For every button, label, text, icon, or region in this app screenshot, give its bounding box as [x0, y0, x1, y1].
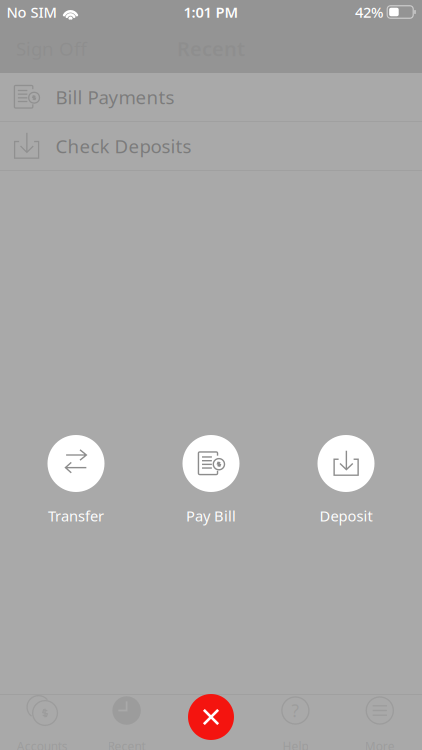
staticText: Deposit	[319, 506, 372, 525]
button[interactable]: Close	[188, 694, 234, 740]
button[interactable]: Deposit	[294, 435, 398, 525]
button[interactable]: Pay Bill	[159, 435, 263, 525]
button[interactable]: Transfer	[24, 435, 128, 525]
button[interactable]	[169, 695, 253, 750]
button[interactable]: Check Deposits	[0, 122, 422, 171]
staticText: No SIM	[6, 2, 56, 22]
staticText: 42%	[355, 2, 383, 22]
staticText: ?	[291, 699, 299, 722]
staticText: Check Deposits	[55, 134, 191, 158]
staticText: Help	[282, 738, 308, 750]
staticText: Accounts	[17, 738, 68, 750]
staticText: Transfer	[48, 506, 104, 525]
staticText: Bill Payments	[55, 85, 174, 109]
button[interactable]: Bill Payments	[0, 73, 422, 122]
staticText: 1:01 PM	[183, 2, 238, 22]
button[interactable]: Recent	[84, 695, 169, 750]
staticText: More	[365, 738, 395, 750]
staticText: Recent	[108, 738, 146, 750]
staticText: Pay Bill	[186, 506, 236, 525]
